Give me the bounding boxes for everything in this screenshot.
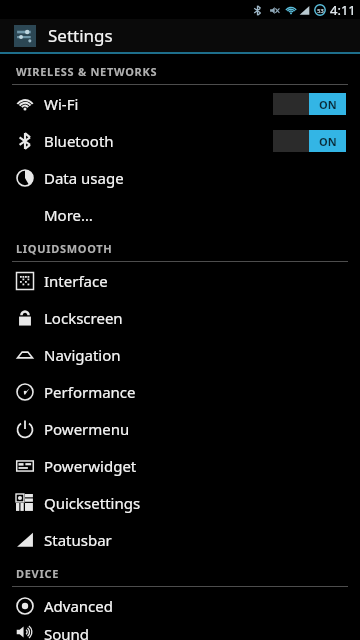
- button[interactable]: More…: [0, 196, 360, 233]
- button[interactable]: Settings: [0, 19, 360, 52]
- staticText: LIQUIDSMOOTH: [16, 241, 113, 256]
- other: Wi-Fi: [16, 95, 34, 113]
- button[interactable]: ON: [273, 130, 346, 152]
- button[interactable]: Statusbar: [0, 521, 360, 558]
- button[interactable]: ON: [273, 93, 346, 115]
- staticText: Interface: [44, 271, 108, 291]
- staticText: Sound: [44, 624, 90, 640]
- button[interactable]: Bluetooth: [0, 122, 360, 159]
- staticText: Lockscreen: [44, 308, 123, 328]
- button[interactable]: Data usage: [0, 159, 360, 196]
- button[interactable]: Advanced: [0, 587, 360, 624]
- button[interactable]: Navigation: [0, 336, 360, 373]
- staticText: Data usage: [44, 168, 124, 188]
- staticText: More…: [44, 205, 93, 225]
- staticText: ON: [319, 134, 337, 149]
- other: Bluetooth: [16, 132, 34, 150]
- button[interactable]: Powerwidget: [0, 447, 360, 484]
- button[interactable]: Quicksettings: [0, 484, 360, 521]
- staticText: Advanced: [44, 596, 114, 616]
- staticText: Powerwidget: [44, 456, 137, 476]
- button[interactable]: Interface: [0, 262, 360, 299]
- staticText: Bluetooth: [44, 131, 114, 151]
- staticText: 53: [317, 7, 324, 14]
- staticText: ON: [319, 97, 337, 112]
- staticText: Powermenu: [44, 419, 130, 439]
- button[interactable]: Lockscreen: [0, 299, 360, 336]
- button[interactable]: Performance: [0, 373, 360, 410]
- button[interactable]: Wi-Fi: [0, 85, 360, 122]
- staticText: Navigation: [44, 345, 121, 365]
- staticText: DEVICE: [16, 566, 60, 581]
- staticText: Settings: [48, 24, 113, 47]
- button[interactable]: Sound: [0, 624, 360, 640]
- staticText: WIRELESS & NETWORKS: [16, 64, 158, 79]
- staticText: Quicksettings: [44, 493, 141, 513]
- button[interactable]: Powermenu: [0, 410, 360, 447]
- staticText: Performance: [44, 382, 136, 402]
- staticText: 4:11: [330, 1, 356, 19]
- staticText: Statusbar: [44, 530, 112, 550]
- staticText: Wi-Fi: [44, 94, 79, 114]
